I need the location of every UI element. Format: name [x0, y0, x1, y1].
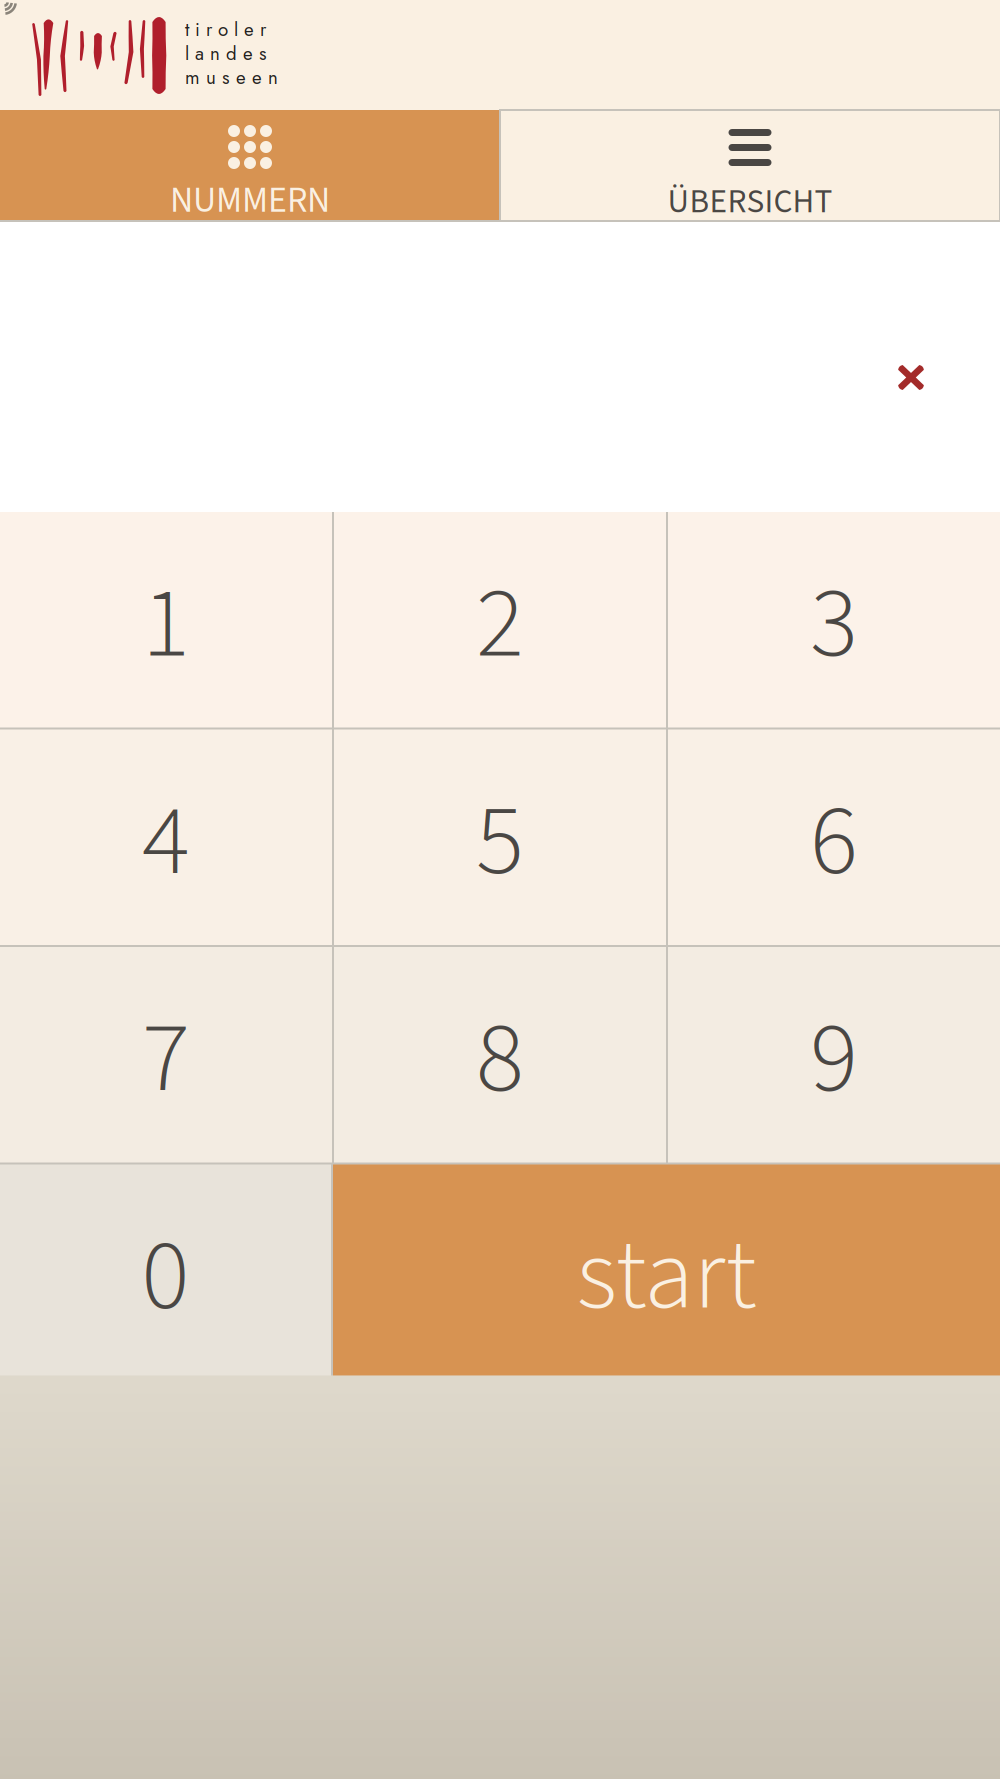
staticText: NUMMERN [170, 175, 330, 226]
button[interactable]: 6 [668, 729, 1000, 945]
button[interactable]: 1 [0, 512, 332, 727]
button[interactable]: 7 [0, 947, 332, 1162]
staticText: 7 [142, 988, 190, 1130]
button[interactable]: Eingabe löschen [871, 338, 951, 417]
button[interactable]: 5 [334, 729, 666, 945]
staticText: 4 [142, 770, 190, 913]
button[interactable]: ÜBERSICHT [500, 110, 1000, 222]
staticText: 0 [141, 1205, 189, 1348]
staticText: t i r o l e r [185, 16, 266, 43]
staticText: 5 [476, 770, 524, 913]
button[interactable]: 3 [668, 512, 1000, 727]
button[interactable]: 9 [668, 947, 1000, 1162]
button[interactable]: 2 [334, 512, 666, 727]
button[interactable]: 4 [0, 729, 332, 945]
staticText: start [576, 1205, 756, 1347]
staticText: 3 [810, 553, 858, 695]
staticText: 8 [476, 988, 524, 1130]
staticText: ÜBERSICHT [667, 178, 832, 225]
button[interactable]: start [333, 1164, 1000, 1380]
staticText: 6 [810, 770, 858, 913]
staticText: 1 [142, 553, 190, 695]
button[interactable]: 8 [334, 947, 666, 1162]
staticText: m u s e e n [185, 64, 278, 91]
button[interactable]: 0 [0, 1164, 331, 1380]
button[interactable]: NUMMERN [0, 110, 500, 222]
staticText: 2 [476, 553, 524, 695]
staticText: l a n d e s [185, 40, 267, 67]
staticText: 9 [810, 988, 858, 1130]
